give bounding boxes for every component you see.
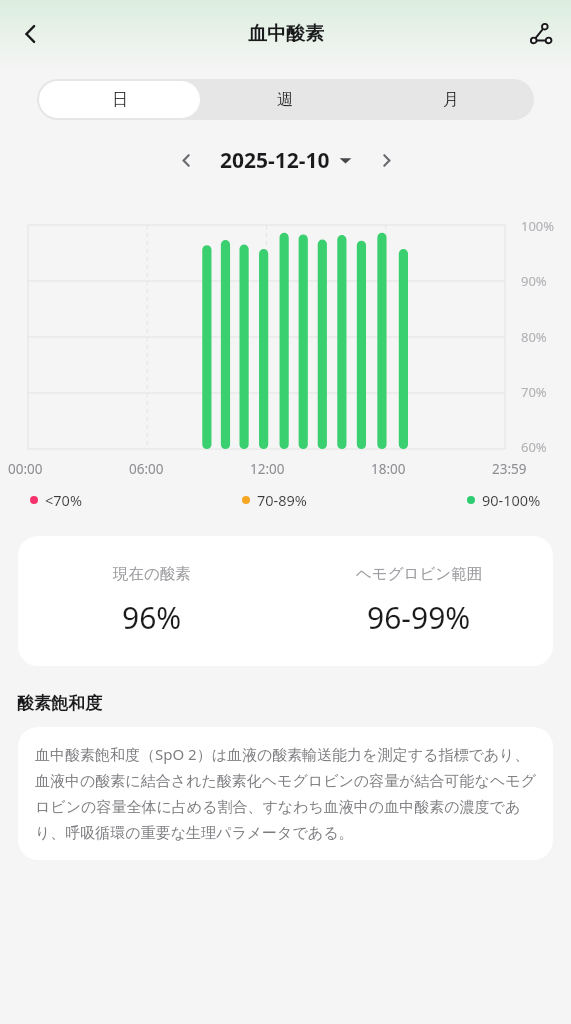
button[interactable]: 日: [39, 81, 200, 118]
button[interactable]: Share: [517, 11, 563, 57]
staticText: 2025-12-10: [220, 146, 330, 175]
button[interactable]: 週: [204, 81, 366, 118]
staticText: 90-100%: [482, 490, 541, 510]
staticText: 06:00: [129, 460, 164, 478]
button[interactable]: 現在の酸素: [18, 536, 553, 666]
staticText: 23:59: [492, 460, 527, 478]
button[interactable]: 2025-12-10: [220, 146, 352, 175]
staticText: 18:00: [371, 460, 406, 478]
button[interactable]: Next day: [367, 141, 405, 179]
staticText: 12:00: [250, 460, 285, 478]
button[interactable]: 月: [370, 81, 532, 118]
button[interactable]: Back: [8, 11, 54, 57]
staticText: 酸素飽和度: [17, 693, 102, 714]
staticText: 月: [443, 90, 459, 110]
staticText: 96-99%: [367, 597, 471, 638]
button[interactable]: Previous day: [167, 141, 205, 179]
staticText: 80%: [521, 328, 547, 345]
staticText: ヘモグロビン範囲: [356, 564, 483, 584]
staticText: 週: [277, 90, 293, 110]
staticText: 100%: [521, 217, 555, 234]
staticText: 血中酸素: [248, 22, 324, 46]
staticText: 96%: [122, 597, 182, 638]
staticText: 現在の酸素: [113, 564, 191, 584]
staticText: 血中酸素飽和度（SpO 2）は血液の酸素輸送能力を測定する指標であり、血液中の酸…: [35, 744, 536, 843]
staticText: 60%: [521, 438, 547, 455]
staticText: 00:00: [8, 460, 43, 478]
staticText: 70-89%: [257, 490, 307, 510]
staticText: 90%: [521, 272, 547, 289]
staticText: 日: [112, 90, 128, 110]
staticText: 70%: [521, 383, 547, 400]
staticText: <70%: [45, 490, 82, 510]
